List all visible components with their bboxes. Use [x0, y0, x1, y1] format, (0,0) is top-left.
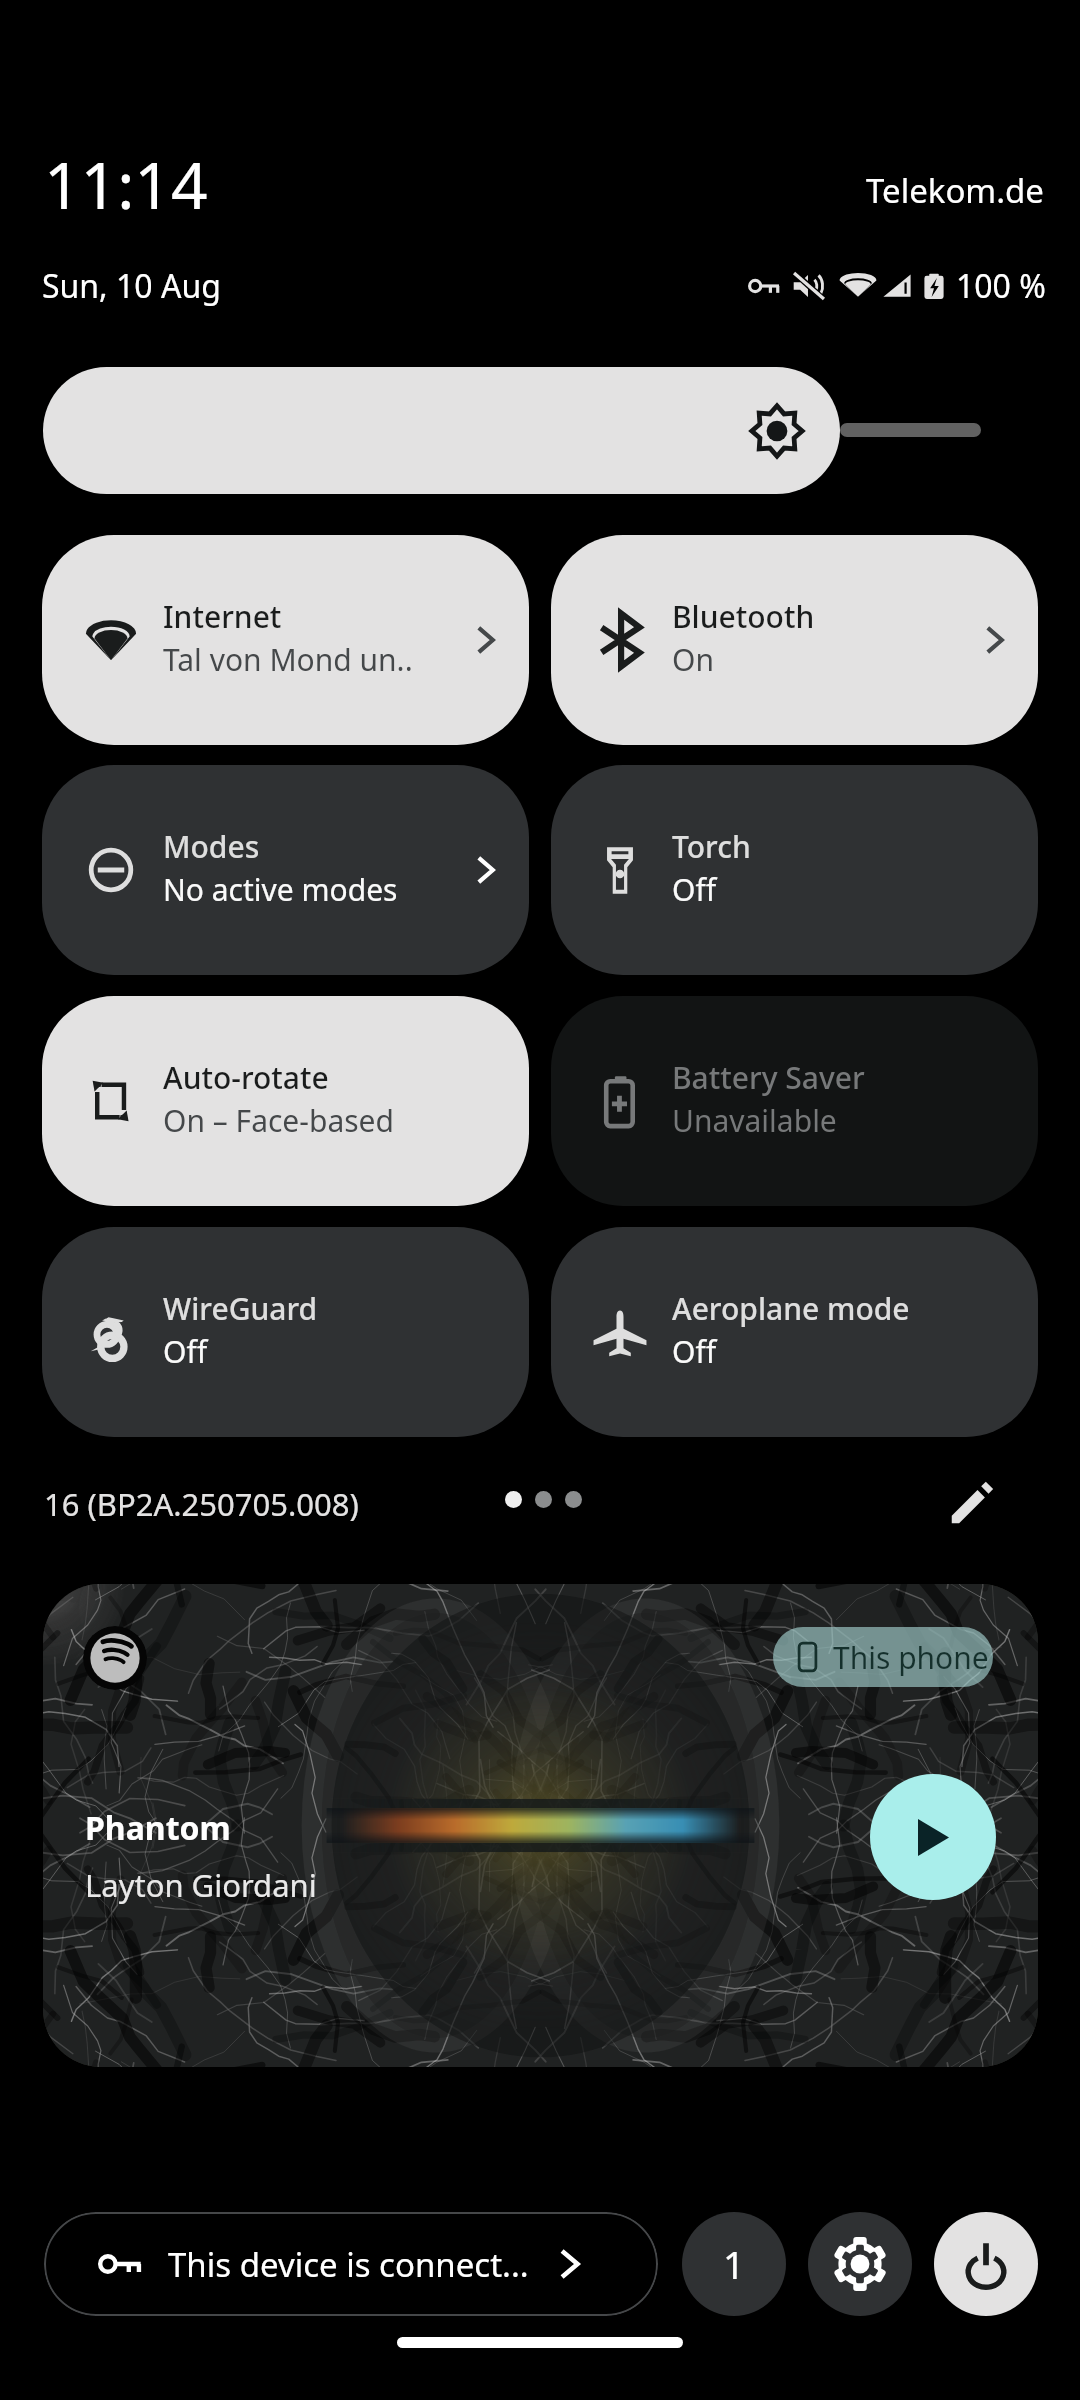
staticText: 1 — [723, 2238, 745, 2290]
button[interactable]: This device is connect... — [44, 2212, 658, 2316]
staticText: Off — [163, 1331, 208, 1372]
button[interactable]: Auto-rotate — [42, 996, 529, 1206]
button[interactable]: Internet — [42, 535, 529, 745]
button[interactable]: Torch — [551, 765, 1038, 975]
staticText: Aeroplane mode — [672, 1288, 910, 1329]
button[interactable]: Modes — [42, 765, 529, 975]
staticText: Unavailable — [672, 1100, 837, 1141]
button[interactable]: Battery Saver — [551, 996, 1038, 1206]
button[interactable]: Brightness — [43, 367, 840, 494]
staticText: 16 (BP2A.250705.008) — [44, 1483, 359, 1525]
button[interactable]: Bluetooth — [551, 535, 1038, 745]
button[interactable]: Open Spotify — [83, 1626, 147, 1690]
staticText: Battery Saver — [672, 1057, 865, 1098]
staticText: Off — [672, 1331, 717, 1372]
staticText: This device is connect... — [168, 2242, 529, 2287]
staticText: This phone — [833, 1637, 989, 1678]
staticText: Sun, 10 Aug — [42, 264, 221, 308]
staticText: Phantom — [85, 1806, 231, 1850]
button[interactable]: This phone — [773, 1627, 993, 1687]
staticText: Tal von Mond un.. — [163, 639, 413, 680]
staticText: Layton Giordani — [85, 1864, 317, 1906]
button[interactable]: Open Spotify — [43, 1584, 1038, 2067]
staticText: 11:14 — [44, 141, 208, 228]
staticText: On – Face-based — [163, 1100, 394, 1141]
button[interactable]: Settings — [808, 2212, 912, 2316]
button[interactable]: Play — [870, 1774, 996, 1900]
staticText: On — [672, 639, 714, 680]
button[interactable]: Aeroplane mode — [551, 1227, 1038, 1437]
staticText: No active modes — [163, 869, 398, 910]
button[interactable]: Notifications — [682, 2212, 786, 2316]
staticText: Telekom.de — [866, 168, 1044, 213]
button[interactable]: WireGuard — [42, 1227, 529, 1437]
staticText: Modes — [163, 826, 260, 867]
staticText: Torch — [672, 826, 751, 867]
staticText: 100 % — [956, 264, 1046, 308]
button[interactable]: Edit tiles — [930, 1460, 1014, 1544]
staticText: WireGuard — [163, 1288, 318, 1329]
button[interactable]: Power — [934, 2212, 1038, 2316]
staticText: Bluetooth — [672, 596, 815, 637]
staticText: Off — [672, 869, 717, 910]
staticText: Auto-rotate — [163, 1057, 329, 1098]
staticText: Internet — [163, 596, 282, 637]
